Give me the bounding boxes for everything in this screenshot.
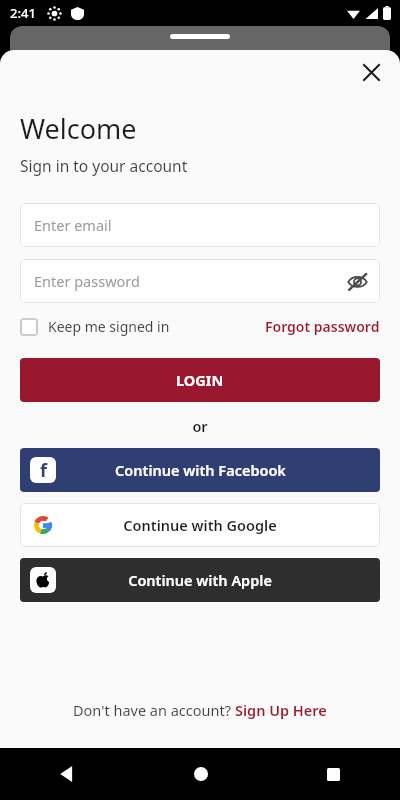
button[interactable]: Recent apps [267, 748, 400, 800]
button[interactable]: Home [134, 748, 267, 800]
button[interactable]: Forgot password [265, 317, 380, 336]
button[interactable]: Enter email [20, 203, 380, 247]
button[interactable]: Sign Up Here [235, 700, 327, 720]
staticText: Continue with Facebook [115, 460, 286, 480]
staticText: f [40, 458, 47, 483]
button[interactable]: Enter password [20, 259, 380, 303]
staticText: or [20, 416, 380, 436]
staticText: Keep me signed in [48, 317, 170, 336]
staticText: Continue with Google [123, 515, 277, 535]
staticText: Welcome [20, 110, 137, 147]
button[interactable]: LOGIN [20, 358, 380, 402]
staticText: Sign Up Here [235, 700, 327, 720]
button[interactable]: Keep me signed in [20, 317, 170, 336]
staticText: Forgot password [265, 317, 380, 336]
staticText: Continue with Apple [128, 570, 272, 590]
button[interactable]: Close [352, 53, 390, 91]
button[interactable]: f [20, 448, 380, 492]
button[interactable]: Continue with Apple [20, 558, 380, 602]
staticText: Enter email [34, 215, 112, 235]
button[interactable]: Back [0, 748, 134, 800]
staticText: 2:41 [10, 4, 36, 22]
staticText: Enter password [34, 271, 140, 291]
staticText: LOGIN [176, 370, 224, 390]
button[interactable]: Continue with Google [20, 503, 380, 547]
staticText: Sign in to your account [20, 155, 188, 176]
button[interactable]: Show password [340, 264, 374, 298]
staticText: Don't have an account? [73, 700, 235, 720]
